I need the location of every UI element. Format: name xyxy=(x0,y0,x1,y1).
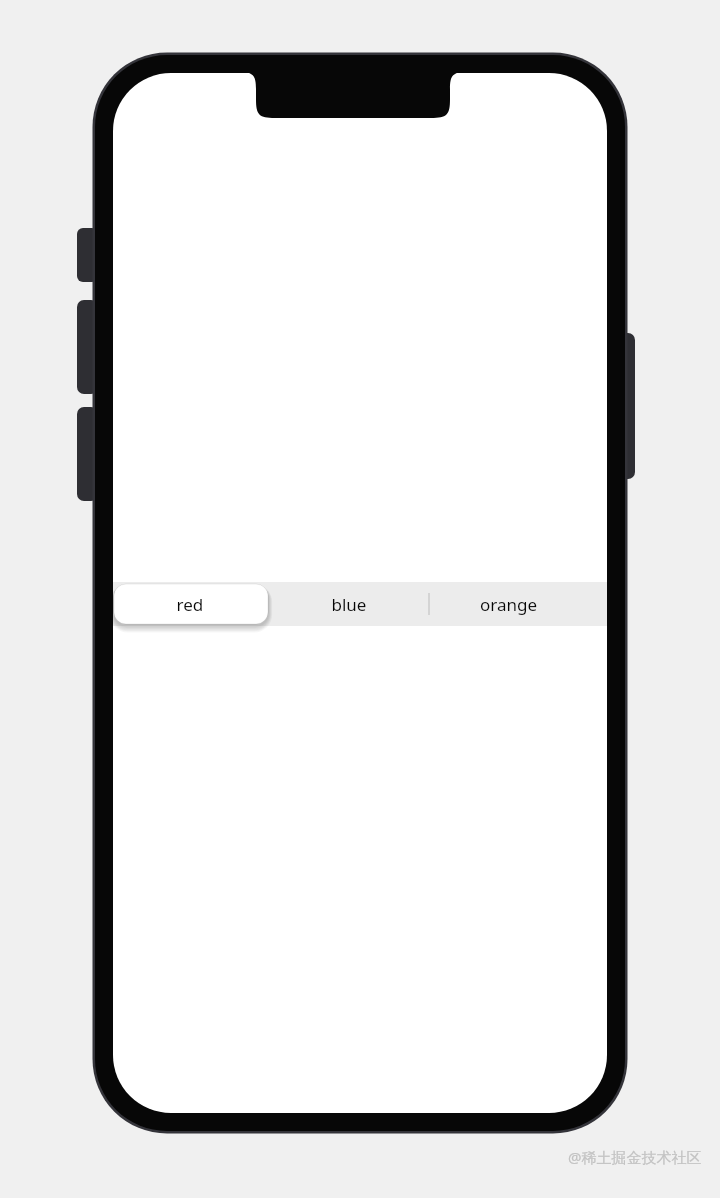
button[interactable]: red xyxy=(113,582,268,626)
button[interactable]: orange xyxy=(429,582,607,626)
button[interactable]: blue xyxy=(268,582,429,626)
